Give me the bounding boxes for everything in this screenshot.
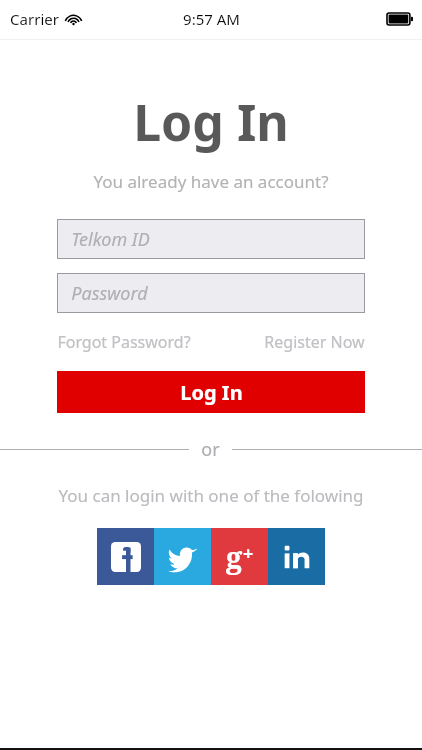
staticText: Telkom ID — [71, 227, 150, 252]
staticText: 9:57 AM — [183, 9, 240, 29]
staticText: or — [201, 437, 220, 462]
button[interactable]: Sign in with Facebook — [97, 528, 154, 585]
staticText: Password — [71, 281, 148, 306]
staticText: + — [243, 541, 254, 566]
button[interactable]: Register Now — [264, 327, 365, 357]
staticText: Register Now — [264, 331, 365, 353]
button[interactable]: Log In — [57, 371, 365, 413]
staticText: Log In — [133, 88, 289, 156]
staticText: You already have an account? — [93, 170, 329, 193]
staticText: Log In — [180, 379, 243, 406]
button[interactable]: Sign in with Twitter — [154, 528, 211, 585]
staticText: Forgot Password? — [57, 331, 191, 353]
staticText: You can login with one of the folowing — [58, 484, 364, 507]
staticText: Carrier — [10, 9, 59, 29]
button[interactable]: Telkom ID — [57, 219, 365, 259]
button[interactable]: Forgot Password? — [57, 327, 191, 357]
button[interactable]: Sign in with LinkedIn — [268, 528, 325, 585]
staticText: g — [226, 537, 243, 576]
button[interactable]: Sign in with Google Plus — [211, 528, 268, 585]
button[interactable]: Password — [57, 273, 365, 313]
